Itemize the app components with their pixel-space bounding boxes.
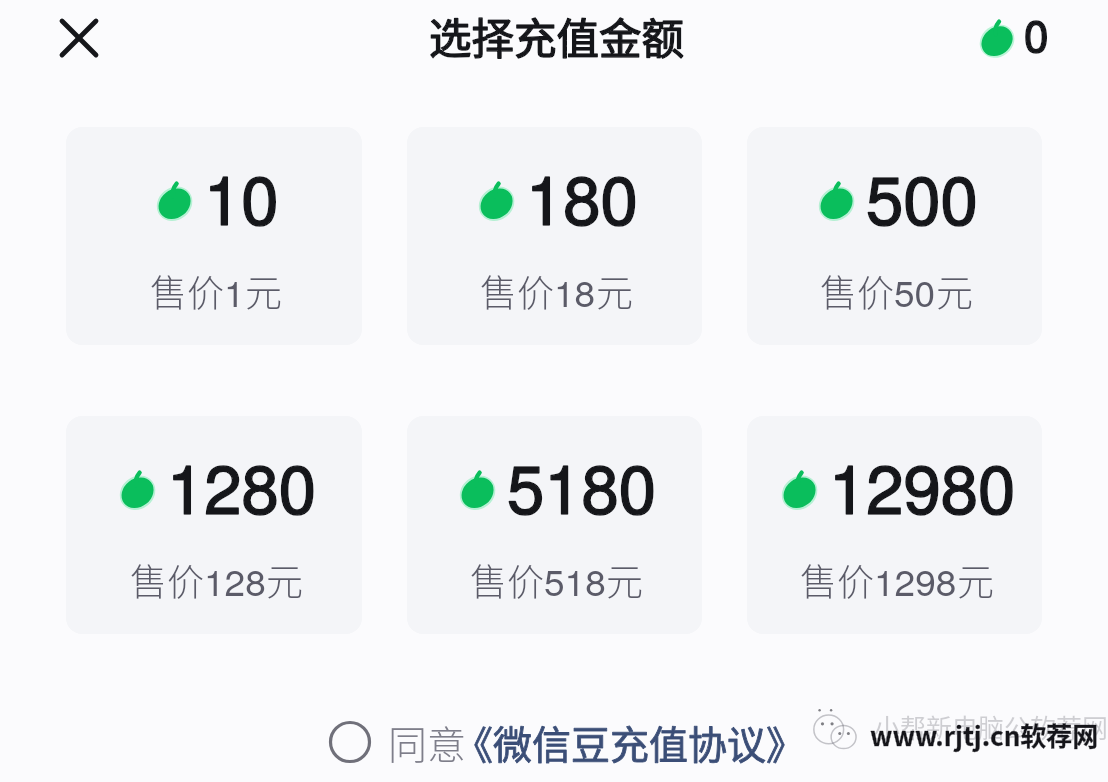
staticText: 元	[936, 264, 973, 318]
button[interactable]: 12980	[747, 416, 1042, 634]
staticText: 500	[866, 148, 978, 244]
staticText: 售价	[470, 553, 544, 607]
button[interactable]: WeChat Bean balance: 0	[980, 4, 1049, 67]
staticText: 售价	[150, 264, 224, 318]
staticText: 1	[224, 265, 245, 318]
staticText: 1298	[874, 554, 957, 607]
staticText: 同意	[388, 714, 467, 770]
staticText: 10	[204, 148, 279, 244]
staticText: 售价	[820, 264, 894, 318]
button[interactable]: 10	[66, 127, 362, 345]
staticText: 元	[606, 553, 643, 607]
staticText: 小帮新电脑公软荐网	[874, 708, 1108, 746]
staticText: 元	[596, 264, 633, 318]
staticText: 128	[204, 554, 266, 607]
staticText: 180	[526, 148, 638, 244]
button[interactable]: 1280	[66, 416, 362, 634]
staticText: 0	[1024, 1, 1049, 64]
staticText: 5180	[507, 437, 657, 533]
button[interactable]: 180	[407, 127, 702, 345]
button[interactable]: 5180	[407, 416, 702, 634]
staticText: 《微信豆充值协议》	[454, 714, 806, 770]
staticText: 12980	[829, 437, 1016, 533]
staticText: 180	[526, 148, 638, 244]
staticText: 1280	[167, 437, 317, 533]
button[interactable]: 500	[747, 127, 1042, 345]
staticText: 元	[245, 264, 282, 318]
button[interactable]: 同意	[328, 714, 819, 770]
staticText: www.rjtj.cn软荐网	[870, 716, 1099, 754]
staticText: 18	[554, 265, 596, 318]
staticText: 10	[204, 148, 279, 244]
staticText: 5180	[507, 437, 657, 533]
staticText: 500	[866, 148, 978, 244]
staticText: 售价	[480, 264, 554, 318]
staticText: 12980	[829, 437, 1016, 533]
staticText: 518	[544, 554, 606, 607]
staticText: 元	[266, 553, 303, 607]
staticText: 售价	[130, 553, 204, 607]
staticText: 售价	[800, 553, 874, 607]
staticText: 选择充值金额	[429, 5, 685, 67]
staticText: 50	[894, 265, 936, 318]
staticText: 元	[957, 553, 994, 607]
button[interactable]: Close	[51, 10, 107, 66]
staticText: www.rjtj.cn软荐网	[870, 716, 1099, 754]
staticText: 1280	[167, 437, 317, 533]
staticText: 选择充值金额	[429, 5, 685, 67]
staticText: 0	[1024, 1, 1049, 64]
staticText: 《微信豆充值协议》	[454, 714, 806, 770]
